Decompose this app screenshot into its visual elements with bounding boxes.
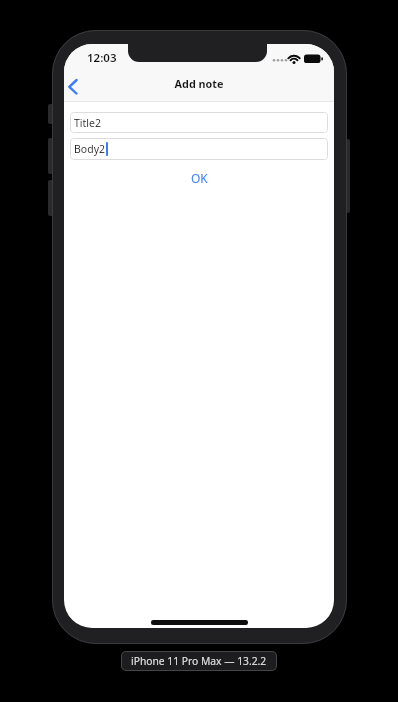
button[interactable]: Title2 — [70, 112, 328, 133]
staticText: OK — [191, 170, 208, 186]
staticText: Title2 — [74, 116, 101, 130]
button[interactable]: Body2 — [70, 138, 328, 160]
staticText: iPhone 11 Pro Max — 13.2.2 — [131, 654, 267, 668]
staticText: Add note — [64, 76, 334, 91]
button[interactable] — [64, 74, 90, 100]
staticText: 12:03 — [87, 50, 117, 66]
button[interactable]: OK — [178, 169, 220, 187]
staticText: Body2 — [74, 142, 105, 156]
